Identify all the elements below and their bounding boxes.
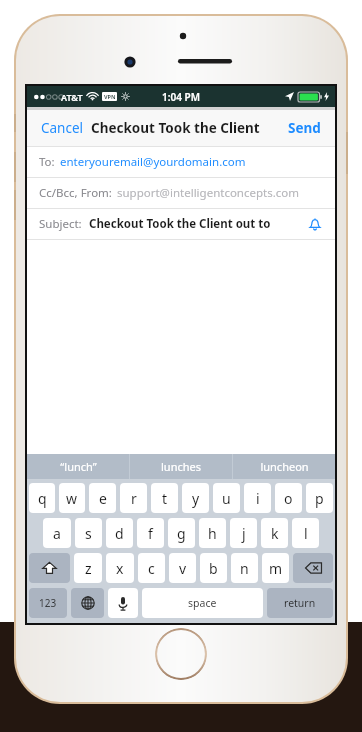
button[interactable]: Home (155, 628, 207, 680)
button[interactable]: k (261, 518, 288, 548)
button[interactable]: Cancel (39, 116, 86, 140)
staticText: enteryouremail@yourdomain.com (60, 154, 246, 170)
button[interactable]: i (244, 483, 271, 513)
button[interactable]: lunches (130, 454, 232, 479)
staticText: j (242, 524, 246, 543)
staticText: Cancel (41, 119, 84, 137)
staticText: t (162, 489, 168, 508)
button[interactable]: Shift (29, 553, 70, 583)
button[interactable]: return (267, 588, 333, 618)
staticText: “lunch” (60, 459, 97, 474)
button[interactable]: j (230, 518, 257, 548)
staticText: Cc/Bcc, From: (39, 185, 112, 201)
button[interactable]: m (262, 553, 289, 583)
staticText: Send (288, 119, 321, 137)
staticText: o (284, 489, 293, 508)
button[interactable]: a (43, 518, 71, 548)
staticText: lunches (161, 459, 201, 474)
staticText: n (240, 559, 249, 578)
button[interactable]: b (200, 553, 227, 583)
staticText: i (256, 489, 260, 508)
staticText: Checkout Took the Client out… (91, 119, 286, 137)
button[interactable]: r (120, 483, 147, 513)
button[interactable]: u (213, 483, 240, 513)
staticText: p (315, 489, 324, 508)
button[interactable]: 123 (29, 588, 67, 618)
staticText: k (271, 524, 279, 543)
button[interactable]: Backspace (293, 553, 333, 583)
button[interactable]: t (151, 483, 178, 513)
button[interactable]: f (137, 518, 164, 548)
button[interactable]: n (231, 553, 258, 583)
button[interactable]: d (106, 518, 133, 548)
staticText: VPN (104, 93, 116, 100)
staticText: To: (39, 154, 55, 170)
staticText: v (179, 559, 187, 578)
button[interactable]: s (75, 518, 102, 548)
staticText: AT&T (61, 91, 83, 103)
staticText: u (222, 489, 231, 508)
staticText: b (209, 559, 218, 578)
button[interactable]: Send (286, 116, 323, 140)
staticText: y (192, 489, 200, 508)
button[interactable]: c (138, 553, 165, 583)
staticText: support@intelligentconcepts.com (117, 185, 300, 201)
staticText: f (148, 524, 153, 543)
button[interactable]: Switch keyboard (71, 588, 104, 618)
staticText: r (131, 489, 137, 508)
button[interactable]: Notify me (303, 212, 327, 236)
button[interactable]: “lunch” (27, 454, 129, 479)
button[interactable]: To: (27, 147, 335, 178)
staticText: s (85, 524, 92, 543)
button[interactable]: Subject: (39, 216, 303, 232)
staticText: x (116, 559, 124, 578)
staticText: d (115, 524, 124, 543)
button[interactable]: g (168, 518, 195, 548)
button[interactable]: h (199, 518, 226, 548)
staticText: c (148, 559, 155, 578)
staticText: h (208, 524, 217, 543)
staticText: 1:04 PM (162, 90, 200, 104)
button[interactable]: x (106, 553, 134, 583)
staticText: space (188, 596, 217, 610)
staticText: return (284, 596, 316, 610)
staticText: w (66, 489, 78, 508)
button[interactable]: w (59, 483, 85, 513)
button[interactable]: z (74, 553, 102, 583)
staticText: l (304, 524, 308, 543)
button[interactable]: q (29, 483, 55, 513)
staticText: 123 (39, 596, 57, 610)
staticText: q (38, 489, 47, 508)
staticText: a (53, 524, 61, 543)
button[interactable]: Dictate (108, 588, 138, 618)
staticText: g (177, 524, 186, 543)
button[interactable]: space (142, 588, 263, 618)
button[interactable]: Cc/Bcc, From: (27, 178, 335, 209)
button[interactable]: l (292, 518, 319, 548)
button[interactable]: v (169, 553, 196, 583)
button[interactable]: luncheon (233, 454, 335, 479)
staticText: m (269, 559, 283, 578)
staticText: Subject: (39, 216, 82, 232)
staticText: z (85, 559, 92, 578)
button[interactable]: o (275, 483, 302, 513)
staticText: Checkout Took the Client out to lunch (89, 216, 303, 232)
staticText: e (99, 489, 107, 508)
button[interactable]: p (306, 483, 333, 513)
button[interactable]: y (182, 483, 209, 513)
button[interactable]: e (89, 483, 116, 513)
staticText: luncheon (260, 459, 309, 474)
